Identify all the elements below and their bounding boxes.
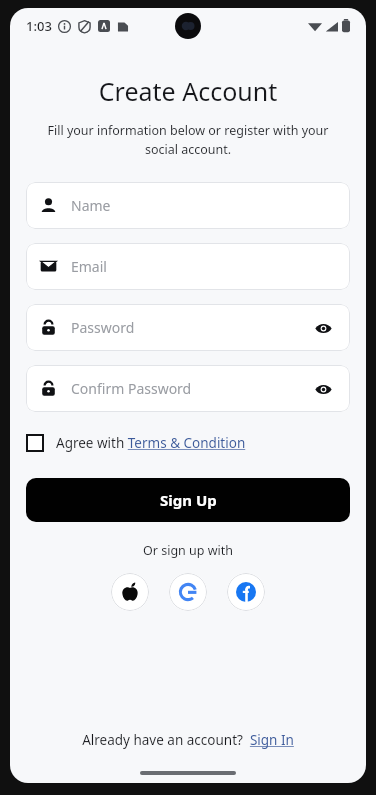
staticText: Password xyxy=(71,318,135,337)
button[interactable]: Toggle password visibility xyxy=(310,315,336,341)
button[interactable]: Sign up with Apple xyxy=(111,573,149,611)
button[interactable]: Already have an account? Sign In xyxy=(10,731,366,749)
staticText: Confirm Password xyxy=(71,379,192,398)
staticText: Or sign up with xyxy=(10,542,366,559)
staticText: Sign Up xyxy=(160,490,217,510)
staticText: Email xyxy=(71,257,107,276)
staticText: 1:03 xyxy=(26,17,52,35)
button[interactable]: Toggle password visibility xyxy=(310,376,336,402)
staticText: Create Account xyxy=(10,74,366,108)
button[interactable]: Sign Up xyxy=(26,478,350,522)
staticText: Fill your information below or register … xyxy=(32,122,344,158)
button[interactable]: Sign up with Facebook xyxy=(227,573,265,611)
button[interactable]: Confirm Password xyxy=(26,365,350,412)
staticText: Agree with Terms & Condition xyxy=(56,434,246,452)
button[interactable]: Password xyxy=(26,304,350,351)
staticText: Already have an account? Sign In xyxy=(82,731,294,749)
button[interactable]: Sign up with Google xyxy=(169,573,207,611)
button[interactable]: Email xyxy=(26,243,350,290)
staticText: Name xyxy=(71,196,111,215)
button[interactable]: Agree with Terms & Condition xyxy=(26,430,350,456)
button[interactable]: Name xyxy=(26,182,350,229)
